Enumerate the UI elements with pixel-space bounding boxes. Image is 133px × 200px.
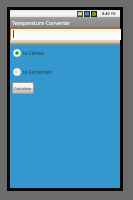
button[interactable]: to Celsius — [10, 46, 120, 60]
button[interactable]: Calculate — [13, 83, 33, 93]
staticText: to Celsius — [23, 50, 44, 56]
staticText: Calculate — [14, 86, 32, 91]
button[interactable] — [10, 27, 120, 45]
staticText: Temperature Converter — [12, 19, 71, 26]
staticText: 8:40 — [102, 11, 110, 16]
button[interactable]: to Fahrenheit — [10, 65, 120, 79]
staticText: to Fahrenheit — [23, 69, 52, 75]
staticText: PM — [111, 12, 116, 16]
